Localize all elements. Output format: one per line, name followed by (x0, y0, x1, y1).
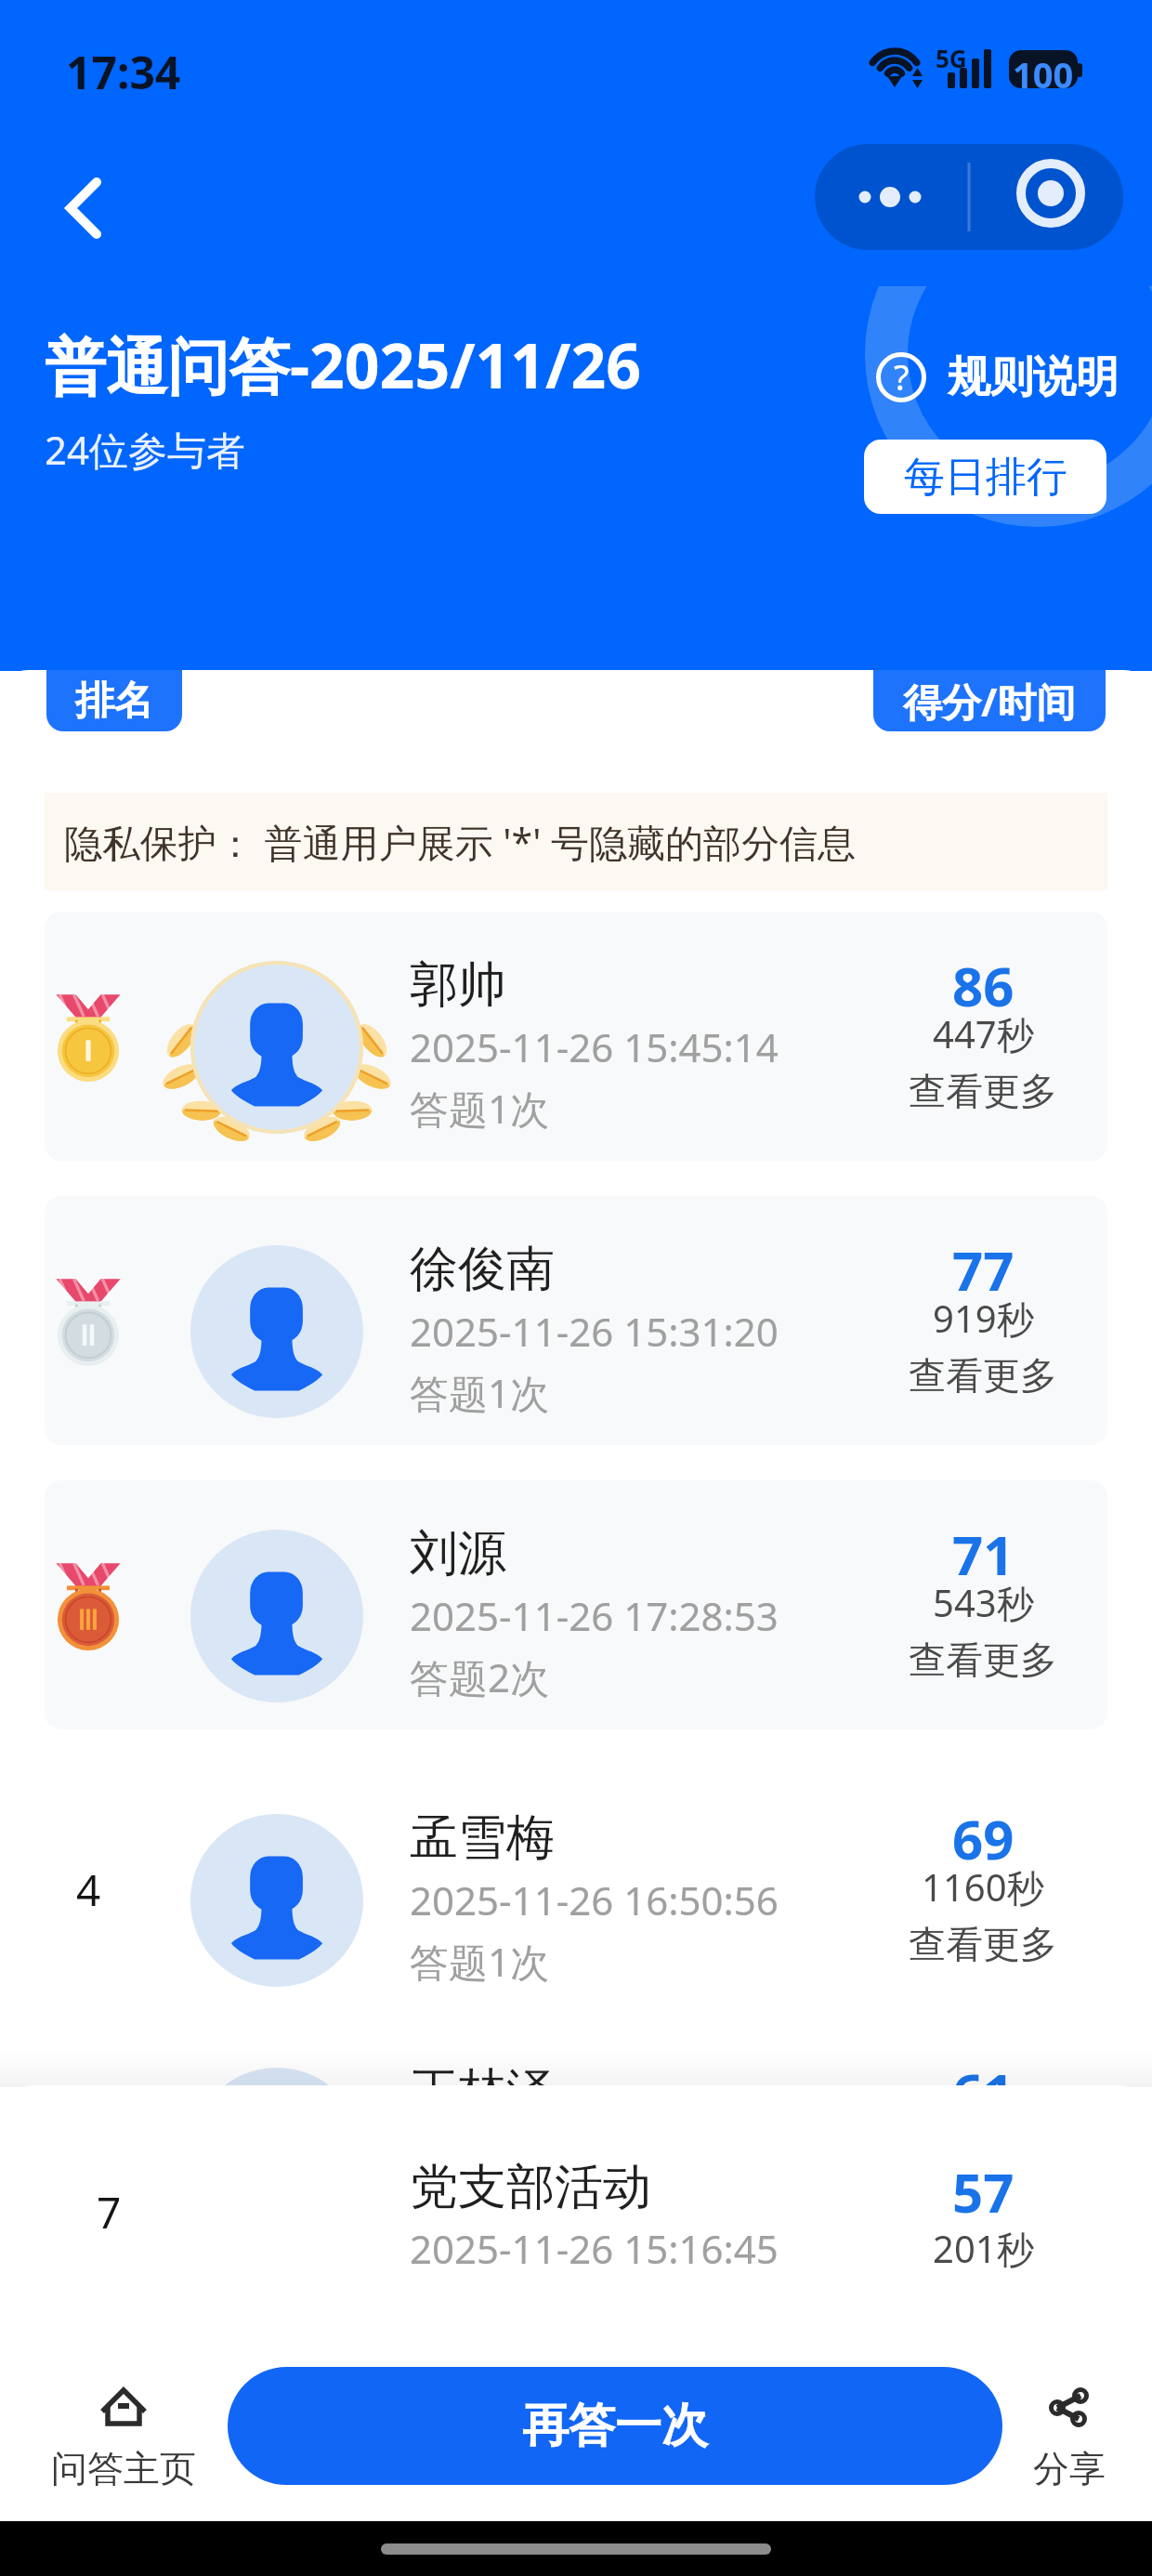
staticText: 86 (952, 949, 1015, 1022)
staticText: 问答主页 (51, 2446, 196, 2491)
button[interactable]: ? (877, 349, 1119, 405)
button[interactable]: 再答一次 (228, 2367, 1002, 2485)
button[interactable]: Mini program menu (815, 144, 1123, 250)
staticText: 24位参与者 (45, 423, 246, 476)
staticText: 69 (952, 1802, 1015, 1875)
staticText: 答题1次 (410, 1935, 550, 1988)
staticText: 查看更多 (909, 2175, 1057, 2221)
button[interactable]: 徐俊南 (45, 1196, 1107, 1445)
staticText: 7 (97, 2183, 122, 2239)
staticText: 61 (952, 2056, 1015, 2129)
staticText: 查看更多 (909, 1636, 1057, 1683)
button[interactable]: 问答主页 (41, 2388, 206, 2491)
staticText: 71 (952, 1518, 1015, 1591)
staticText: 再答一次 (522, 2397, 708, 2455)
staticText: 每日排行 (904, 452, 1067, 503)
staticText: 党支部活动 (410, 2157, 651, 2218)
staticText: 刘源 (410, 1523, 506, 1584)
staticText: 2025-11-26 16:50:56 (410, 1873, 779, 1926)
button[interactable]: 郭帅 (45, 912, 1107, 1161)
button[interactable]: 每日排行 (864, 440, 1106, 514)
button[interactable]: 4 (45, 1765, 1107, 2014)
staticText: 得分/时间 (903, 675, 1076, 728)
staticText: 答题2次 (410, 1650, 550, 1703)
staticText: 查看更多 (909, 1352, 1057, 1399)
staticText: 隐私保护： 普通用户展示 '*' 号隐藏的部分信息 (64, 816, 857, 868)
staticText: 孟雪梅 (410, 1807, 555, 1869)
staticText: 17:34 (66, 42, 181, 102)
staticText: 郭帅 (410, 954, 506, 1016)
staticText: 5G (936, 42, 967, 74)
staticText: 排名 (75, 677, 153, 726)
staticText: 919秒 (933, 1293, 1034, 1344)
staticText: 77 (952, 1233, 1015, 1307)
staticText: 徐俊南 (410, 1239, 555, 1300)
staticText: 2025-11-26 15:45:14 (410, 1020, 779, 1073)
staticText: 4 (76, 1860, 101, 1919)
staticText: 查看更多 (909, 1068, 1057, 1114)
staticText: 2025-11-26 15:16:45 (410, 2222, 779, 2275)
button[interactable]: Back (33, 152, 117, 236)
staticText: 2025-11-26 15:31:20 (410, 1305, 779, 1358)
staticText: 答题1次 (410, 1366, 550, 1419)
staticText: ? (894, 352, 910, 401)
staticText: 2025-11-26 16:04:21 (410, 2127, 779, 2180)
staticText: 447秒 (933, 1008, 1034, 1059)
button[interactable]: 分享 (1009, 2388, 1130, 2491)
staticText: 2025-11-26 17:28:53 (410, 1589, 779, 1642)
staticText: 查看更多 (909, 1921, 1057, 1967)
staticText: 57 (952, 2155, 1015, 2228)
staticText: 分享 (1033, 2446, 1106, 2491)
button[interactable]: 5 (45, 2018, 1107, 2267)
staticText: 100 (1013, 50, 1074, 88)
button[interactable]: 刘源 (45, 1480, 1107, 1729)
button[interactable]: 排名 (46, 670, 182, 731)
staticText: 普通问答-2025/11/26 (45, 322, 641, 406)
staticText: 543秒 (933, 1577, 1034, 1628)
staticText: 答题1次 (410, 2188, 550, 2241)
button[interactable]: 得分/时间 (873, 670, 1106, 731)
staticText: 王林泽 (410, 2061, 555, 2123)
staticText: 1160秒 (922, 1861, 1044, 1912)
staticText: 答题1次 (410, 1082, 550, 1135)
staticText: 规则说明 (948, 350, 1119, 404)
staticText: 201秒 (933, 2223, 1034, 2274)
